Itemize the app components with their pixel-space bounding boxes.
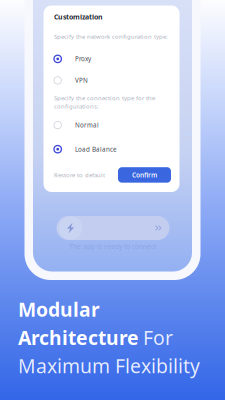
staticText: Maximum Flexibility — [18, 353, 200, 379]
staticText: Architecture — [18, 324, 139, 351]
staticText: Load Balance — [75, 145, 117, 153]
staticText: configurations: — [54, 102, 99, 110]
staticText: Confirm — [132, 170, 157, 179]
staticText: The app is ready to connect — [69, 242, 156, 251]
button[interactable]: Confirm — [118, 167, 171, 183]
staticText: Restore to default — [54, 171, 105, 179]
button[interactable]: Load Balance — [54, 140, 169, 158]
staticText: Specify the connection type for the — [54, 94, 155, 102]
staticText: For — [143, 324, 173, 351]
button[interactable]: Normal — [54, 116, 169, 134]
staticText: Normal — [75, 121, 99, 129]
button[interactable]: Proxy — [54, 50, 169, 68]
staticText: Specify the network configuration type: — [54, 32, 168, 40]
button[interactable]: Restore to default — [54, 167, 106, 182]
staticText: Customization — [54, 12, 103, 21]
staticText: Proxy — [75, 55, 91, 63]
button[interactable]: VPN — [54, 71, 169, 89]
staticText: Modular — [18, 296, 100, 322]
staticText: VPN — [75, 76, 88, 85]
